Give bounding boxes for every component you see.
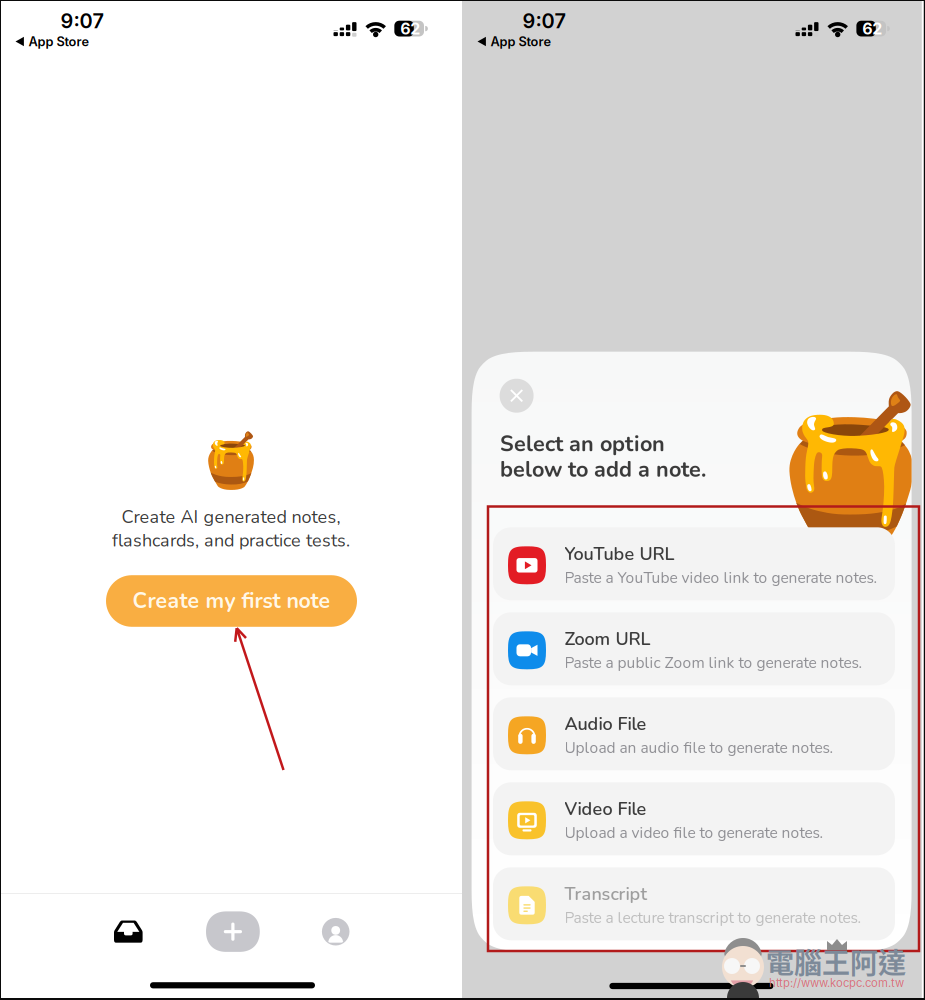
staticText: 62 <box>400 19 420 38</box>
button[interactable]: Profile <box>294 907 378 957</box>
button[interactable]: Add note <box>206 911 260 952</box>
staticText: Audio File <box>564 712 646 736</box>
staticText: 電腦王阿達 <box>766 941 906 981</box>
staticText: YouTube URL <box>564 542 674 566</box>
staticText: below to add a note. <box>500 455 706 484</box>
button[interactable]: Create my first note <box>106 575 357 627</box>
staticText: Paste a lecture transcript to generate n… <box>564 907 861 928</box>
staticText: Create my first note <box>132 586 330 616</box>
staticText: Upload an audio file to generate notes. <box>564 737 833 758</box>
staticText: App Store <box>28 34 89 49</box>
button[interactable]: Transcript <box>493 867 895 940</box>
staticText: flashcards, and practice tests. <box>112 528 350 553</box>
staticText: 9:07 <box>60 9 103 33</box>
staticText: Create AI generated notes, <box>121 505 340 529</box>
button[interactable]: Close <box>500 379 534 413</box>
button[interactable]: Video File <box>493 782 895 855</box>
button[interactable]: Notes <box>86 906 170 956</box>
staticText: Paste a YouTube video link to generate n… <box>564 567 877 588</box>
staticText: Upload a video file to generate notes. <box>564 822 823 843</box>
button[interactable]: App Store <box>477 33 551 49</box>
staticText: 62 <box>862 19 882 38</box>
staticText: Paste a public Zoom link to generate not… <box>564 652 862 673</box>
staticText: Select an option <box>500 429 665 459</box>
staticText: Transcript <box>564 882 647 906</box>
button[interactable]: YouTube URL <box>493 527 895 600</box>
staticText: 🍯 <box>762 388 925 553</box>
staticText: Zoom URL <box>564 627 650 651</box>
staticText: App Store <box>490 34 551 49</box>
staticText: 9:07 <box>522 9 565 33</box>
staticText: Video File <box>564 797 646 821</box>
button[interactable]: App Store <box>15 33 89 49</box>
staticText: 🍯 <box>198 430 264 491</box>
staticText: http://www.kocpc.com.tw <box>769 976 904 990</box>
button[interactable]: Zoom URL <box>493 612 895 685</box>
button[interactable]: Audio File <box>493 697 895 770</box>
